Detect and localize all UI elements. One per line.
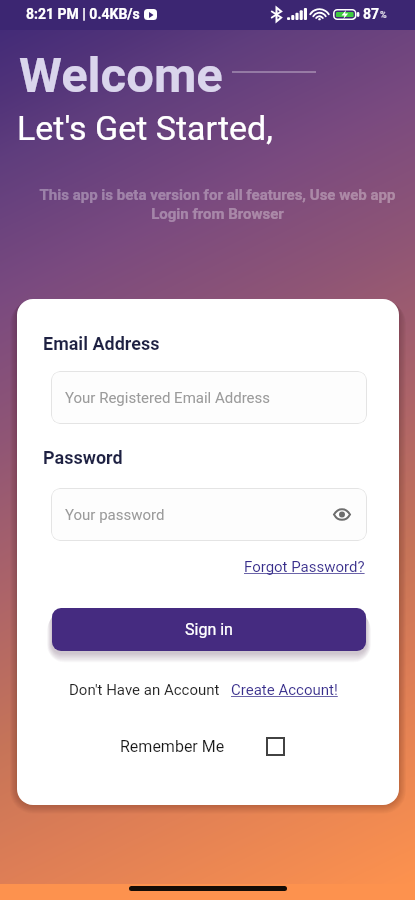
staticText: Your Registered Email Address bbox=[65, 389, 271, 407]
staticText: 8:21 PM | 0.4KB/s bbox=[26, 6, 140, 22]
staticText: Your password bbox=[65, 506, 165, 524]
staticText: Don't Have an Account bbox=[69, 681, 220, 699]
staticText: Remember Me bbox=[120, 737, 225, 756]
staticText: Welcome bbox=[19, 47, 223, 104]
staticText: Email Address bbox=[43, 333, 160, 354]
button[interactable]: Your Registered Email Address bbox=[51, 371, 367, 424]
button[interactable]: Remember Me checkbox bbox=[266, 737, 285, 756]
staticText: This app is beta version for all feature… bbox=[30, 186, 405, 223]
staticText: Let's Get Started, bbox=[17, 108, 273, 148]
other: Show password bbox=[334, 509, 350, 520]
staticText: % bbox=[380, 10, 387, 21]
button[interactable]: Create Account! bbox=[231, 681, 338, 699]
button[interactable]: Forgot Password? bbox=[244, 558, 365, 576]
staticText: Password bbox=[43, 447, 123, 468]
button[interactable]: Sign in bbox=[52, 608, 366, 651]
button[interactable]: Your password bbox=[51, 488, 367, 541]
staticText: 87 bbox=[363, 6, 380, 22]
staticText: Sign in bbox=[185, 620, 233, 639]
